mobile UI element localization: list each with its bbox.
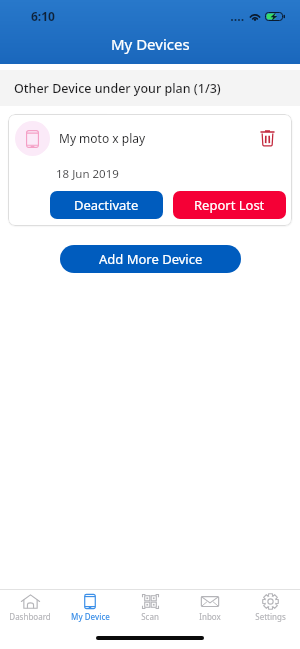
button[interactable]: My Device <box>60 594 120 622</box>
staticText: Add More Device <box>99 250 203 268</box>
staticText: Scan <box>141 611 159 622</box>
staticText: Inbox <box>199 611 221 622</box>
staticText: Settings <box>255 611 286 622</box>
button[interactable]: Inbox <box>180 594 240 622</box>
button[interactable]: Deactivate <box>50 191 163 219</box>
button[interactable]: Scan <box>120 594 180 622</box>
button[interactable]: Add More Device <box>60 245 241 273</box>
staticText: Deactivate <box>74 196 139 214</box>
staticText: Report Lost <box>194 196 265 214</box>
staticText: Other Device under your plan (1/3) <box>14 80 221 97</box>
staticText: Dashboard <box>9 611 51 622</box>
button[interactable]: Delete device <box>252 123 282 153</box>
staticText: 6:10 <box>31 8 55 24</box>
staticText: My Device <box>71 611 110 622</box>
staticText: My moto x play <box>59 130 146 146</box>
staticText: My Devices <box>111 34 190 54</box>
staticText: 18 Jun 2019 <box>56 166 119 182</box>
button[interactable]: Settings <box>240 594 300 622</box>
button[interactable]: Dashboard <box>0 594 60 622</box>
button[interactable]: Report Lost <box>173 191 286 219</box>
